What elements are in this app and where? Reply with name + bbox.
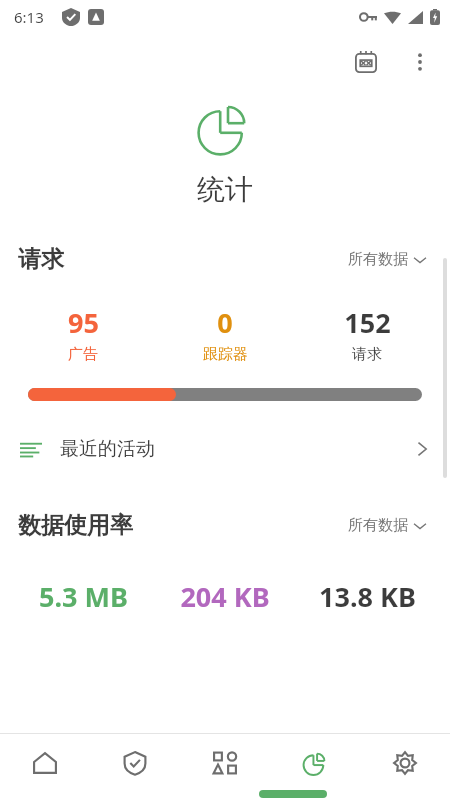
button[interactable]: Protection: [90, 734, 180, 800]
staticText: 最近的活动: [60, 437, 155, 461]
button[interactable]: More options: [398, 40, 442, 84]
staticText: 0: [217, 304, 233, 341]
button[interactable]: 所有数据: [344, 246, 430, 273]
staticText: 请求: [18, 245, 64, 274]
staticText: 统计: [197, 172, 253, 207]
button[interactable]: Statistics: [270, 734, 360, 800]
staticText: 13.8 KB: [319, 578, 416, 615]
staticText: 6:13: [14, 7, 44, 27]
staticText: 所有数据: [348, 250, 408, 269]
staticText: 5.3 MB: [39, 578, 128, 615]
button[interactable]: Calendar: [344, 40, 388, 84]
button[interactable]: Home: [0, 734, 90, 800]
button[interactable]: 最近的活动: [0, 431, 450, 467]
staticText: 204 KB: [180, 578, 270, 615]
button[interactable]: Settings: [360, 734, 450, 800]
button[interactable]: 152: [296, 302, 438, 366]
staticText: 95: [68, 304, 99, 341]
staticText: 152: [344, 304, 391, 341]
button[interactable]: Apps: [180, 734, 270, 800]
staticText: 请求: [352, 345, 382, 364]
button[interactable]: 13.8 KB: [296, 578, 438, 615]
staticText: 所有数据: [348, 516, 408, 535]
staticText: 数据使用率: [18, 511, 133, 540]
button[interactable]: 5.3 MB: [12, 578, 154, 615]
button[interactable]: 所有数据: [344, 512, 430, 539]
staticText: 广告: [68, 345, 98, 364]
button[interactable]: 0: [154, 302, 296, 366]
button[interactable]: 95: [12, 302, 154, 366]
staticText: 跟踪器: [203, 345, 248, 364]
button[interactable]: 204 KB: [154, 578, 296, 615]
